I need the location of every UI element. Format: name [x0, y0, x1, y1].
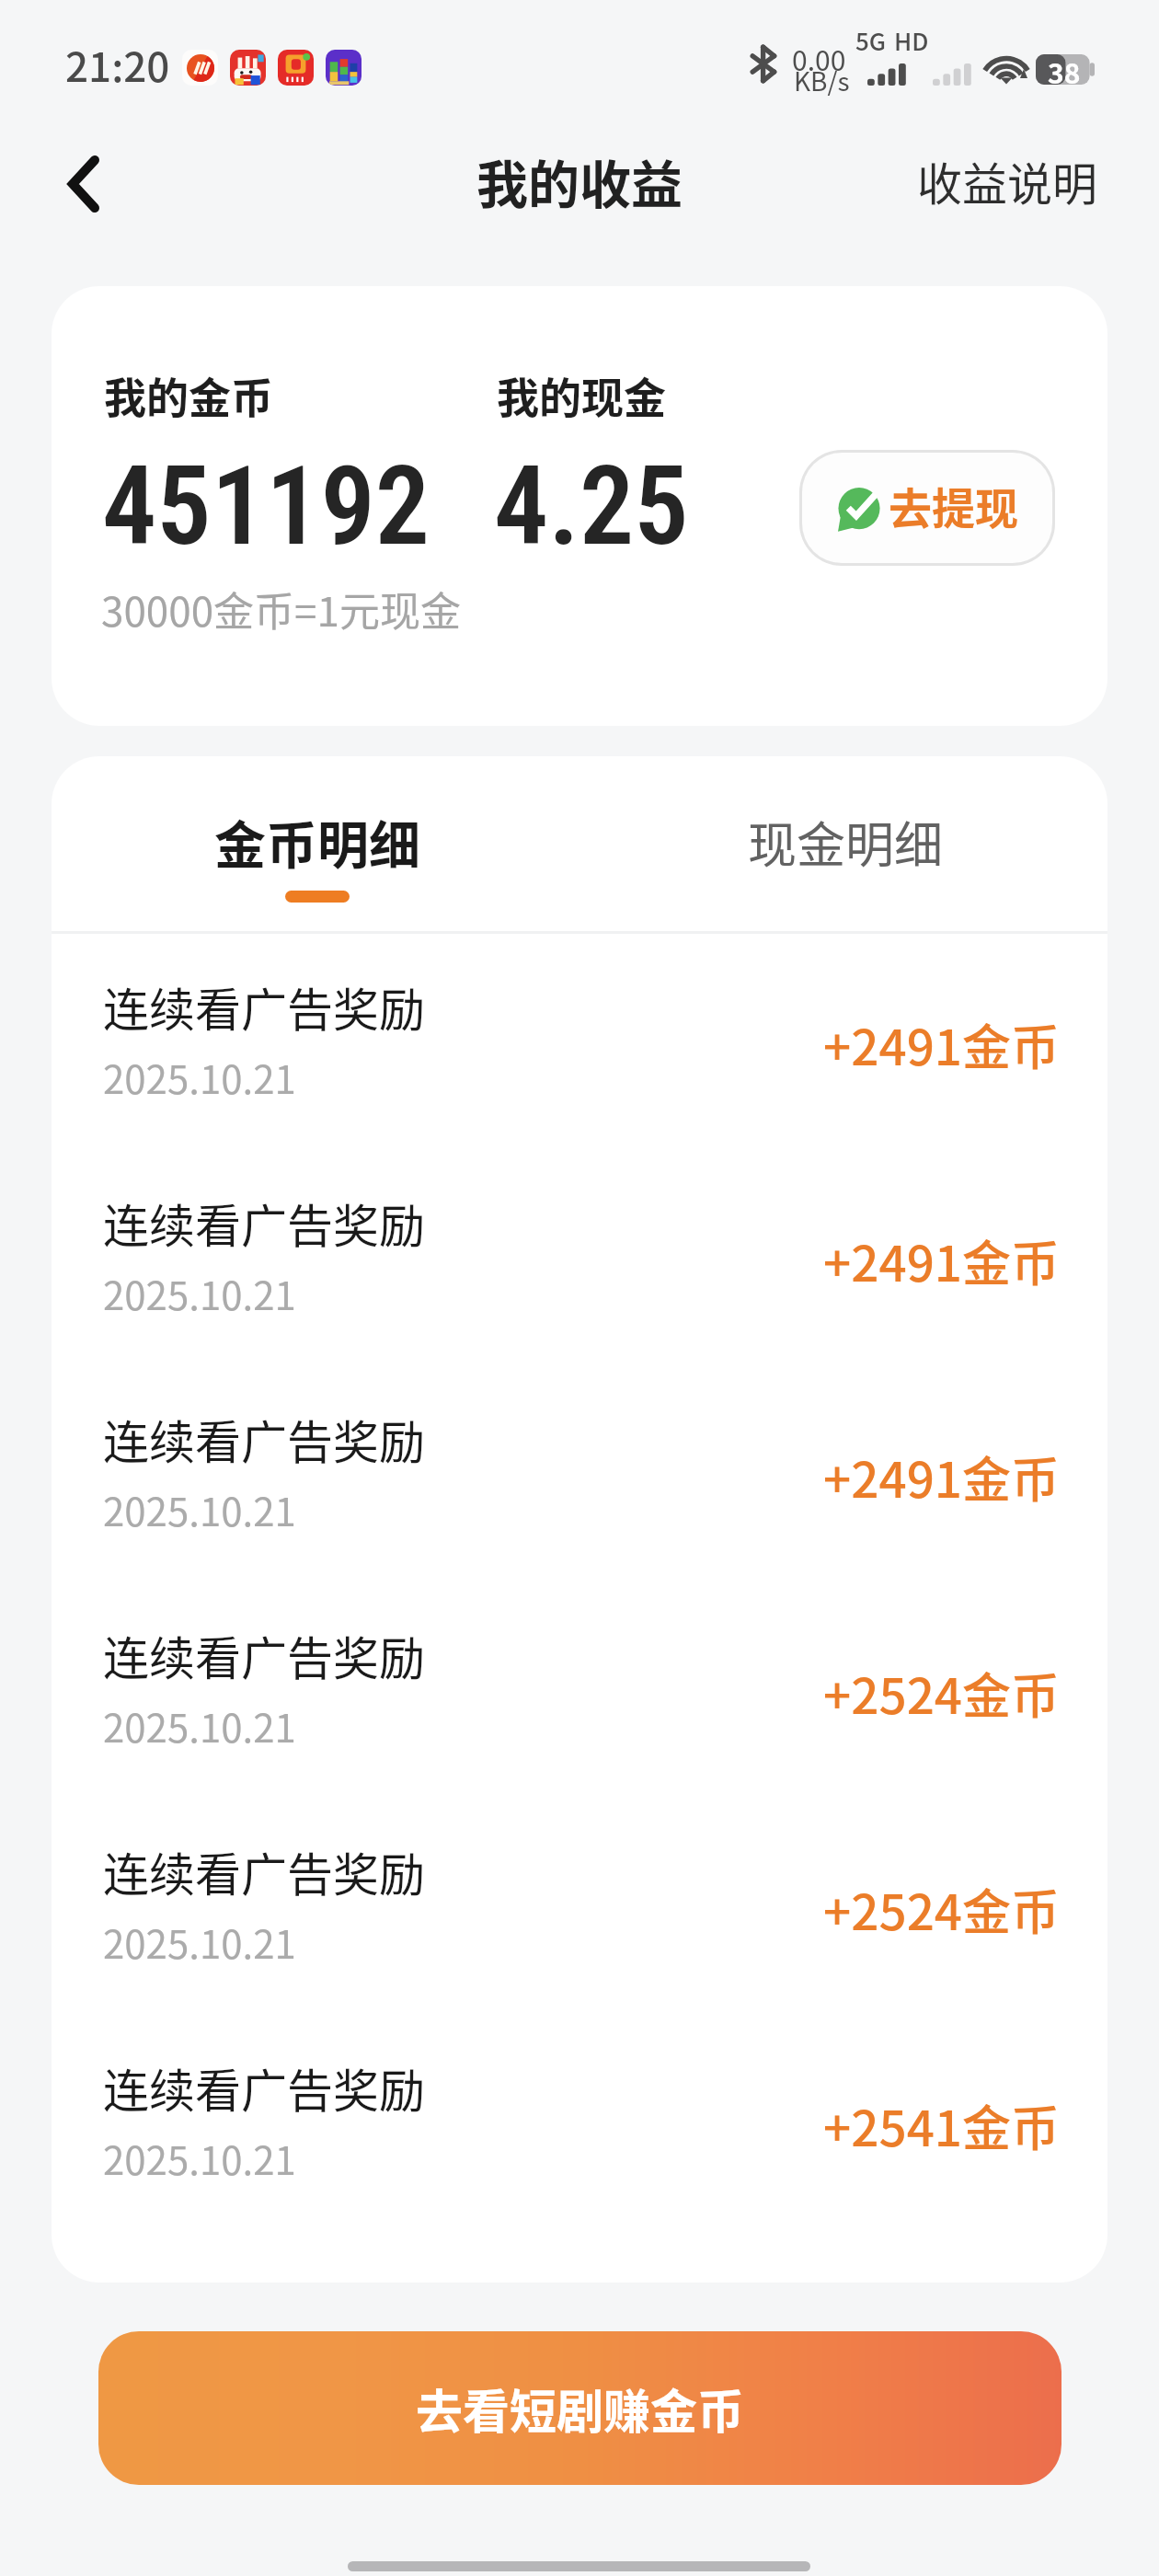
button[interactable]: 现金明细 — [696, 779, 994, 905]
staticText: 4.25 — [494, 443, 689, 570]
staticText: 我的收益 — [476, 144, 683, 218]
staticText: 451192 — [102, 443, 430, 570]
staticText: +2541金币 — [823, 2090, 1061, 2161]
button[interactable]: 连续看广告奖励 — [52, 1371, 1107, 1587]
staticText: 5G — [855, 23, 887, 58]
staticText: 21:20 — [65, 35, 170, 94]
staticText: 2025.10.21 — [103, 1697, 296, 1754]
button[interactable]: 连续看广告奖励 — [52, 1155, 1107, 1371]
button[interactable]: 金币明细 — [163, 776, 472, 930]
staticText: 38 — [1048, 52, 1081, 91]
staticText: KB/s — [794, 62, 850, 99]
staticText: 30000金币=1元现金 — [101, 580, 461, 638]
staticText: 连续看广告奖励 — [103, 1406, 425, 1472]
staticText: 2025.10.21 — [103, 1049, 296, 1105]
staticText: 2025.10.21 — [103, 1914, 296, 1970]
staticText: 去看短剧赚金币 — [416, 2375, 745, 2443]
staticText: 0.00 — [792, 39, 846, 78]
staticText: 金币明细 — [214, 804, 420, 879]
staticText: 2025.10.21 — [103, 1265, 296, 1321]
staticText: 连续看广告奖励 — [103, 2054, 425, 2121]
staticText: +2491金币 — [823, 1009, 1061, 1080]
staticText: 现金明细 — [748, 807, 943, 878]
staticText: +2491金币 — [823, 1442, 1061, 1512]
button[interactable]: 连续看广告奖励 — [52, 1803, 1107, 2019]
staticText: 连续看广告奖励 — [103, 1622, 425, 1688]
staticText: +2524金币 — [823, 1874, 1061, 1945]
button[interactable]: 连续看广告奖励 — [52, 2019, 1107, 2236]
staticText: 我的现金 — [497, 364, 666, 426]
button[interactable]: 连续看广告奖励 — [52, 938, 1107, 1155]
button[interactable]: 收益说明 — [899, 130, 1117, 232]
staticText: 连续看广告奖励 — [103, 973, 425, 1040]
staticText: 收益说明 — [917, 148, 1098, 213]
staticText: 我的金币 — [104, 364, 273, 426]
staticText: +2524金币 — [823, 1658, 1061, 1729]
staticText: HD — [894, 23, 929, 58]
staticText: +2491金币 — [823, 1225, 1061, 1296]
staticText: 连续看广告奖励 — [103, 1838, 425, 1904]
button[interactable]: 连续看广告奖励 — [52, 1587, 1107, 1803]
staticText: 2025.10.21 — [103, 1481, 296, 1537]
staticText: 2025.10.21 — [103, 2130, 296, 2186]
button[interactable]: 去看短剧赚金币 — [98, 2331, 1061, 2485]
button[interactable]: 去提现 — [802, 453, 1052, 563]
staticText: 连续看广告奖励 — [103, 1190, 425, 1256]
staticText: 去提现 — [889, 474, 1018, 536]
button[interactable]: Back — [28, 129, 140, 239]
